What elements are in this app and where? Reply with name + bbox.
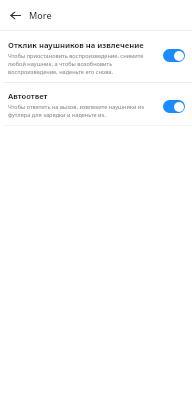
- staticText: Чтобы ответить на вызов, извлеките наушн…: [8, 103, 157, 119]
- staticText: Чтобы приостановить воспроизведение, сни…: [8, 52, 157, 76]
- staticText: Отклик наушников на извлечение: [8, 40, 144, 50]
- button[interactable]: Автоответ: [0, 86, 192, 125]
- staticText: More: [29, 9, 52, 21]
- button[interactable]: Toggle: [163, 49, 185, 62]
- button[interactable]: Toggle: [163, 100, 185, 113]
- button[interactable]: Отклик наушников на извлечение: [0, 35, 192, 82]
- button[interactable]: Back: [5, 5, 25, 25]
- staticText: Автоответ: [8, 91, 48, 101]
